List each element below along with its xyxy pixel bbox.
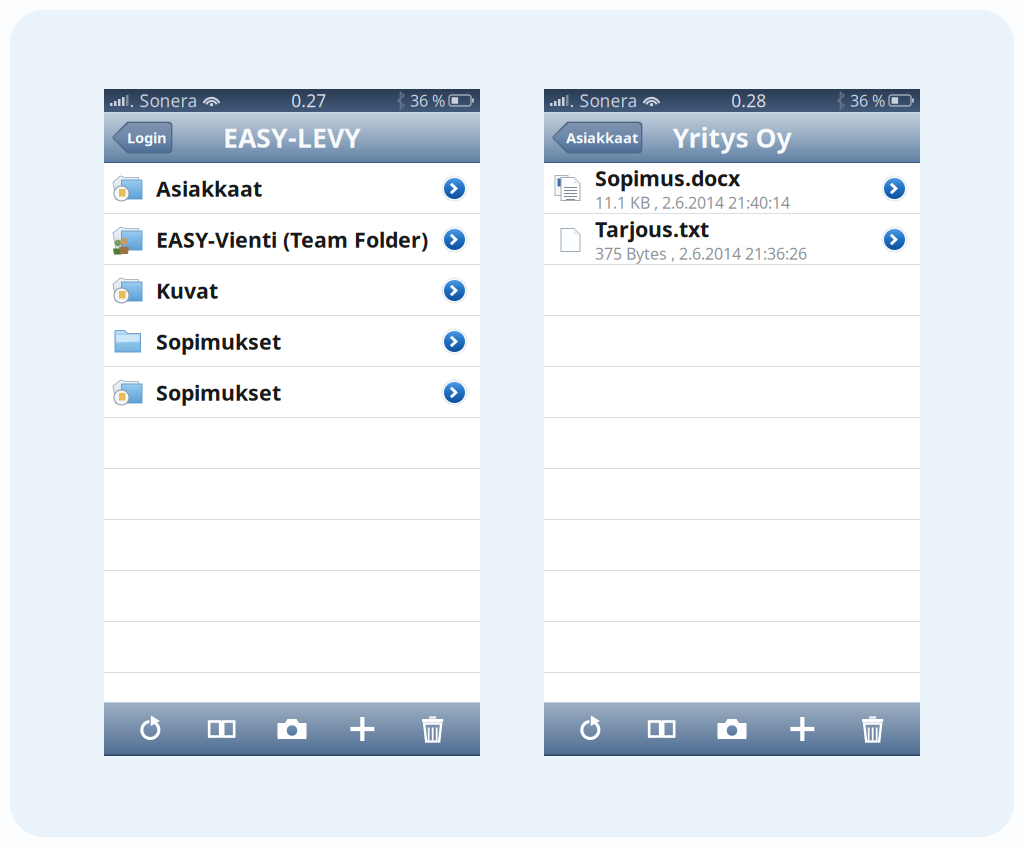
button[interactable]: EASY-Vienti (Team Folder) [104,214,480,265]
staticText: Sopimus.docx [595,164,740,192]
staticText: Asiakkaat [566,128,638,147]
button[interactable]: Refresh [128,707,174,751]
button[interactable]: Camera [269,707,315,751]
staticText: . Sonera [129,89,197,112]
button[interactable]: Add [339,707,385,751]
staticText: EASY-Vienti (Team Folder) [156,225,428,254]
button[interactable]: Sopimus.docx [544,163,920,214]
staticText: . Sonera [569,89,637,112]
staticText: 36 % [410,90,445,111]
staticText: 36 % [850,90,885,111]
staticText: Asiakkaat [156,174,262,203]
staticText: 11.1 KB , 2.6.2014 21:40:14 [595,192,790,213]
staticText: Sopimukset [156,327,281,356]
button[interactable]: Sopimukset [104,367,480,418]
button[interactable]: Login [111,121,173,154]
staticText: Tarjous.txt [595,215,709,243]
staticText: Sopimukset [156,378,281,407]
button[interactable]: Sopimukset [104,316,480,367]
staticText: 375 Bytes , 2.6.2014 21:36:26 [595,243,807,264]
button[interactable]: Kuvat [104,265,480,316]
button[interactable]: Asiakkaat [551,121,643,154]
staticText: 0.27 [291,89,326,112]
button[interactable]: Refresh [568,707,614,751]
button[interactable]: Asiakkaat [104,163,480,214]
staticText: Yritys Oy [672,120,791,155]
button[interactable]: Camera [709,707,755,751]
staticText: Login [127,128,167,147]
button[interactable]: Delete [850,707,896,751]
button[interactable]: Bookmarks [639,707,685,751]
staticText: Kuvat [156,276,218,305]
button[interactable]: Bookmarks [199,707,245,751]
button[interactable]: Delete [410,707,456,751]
button[interactable]: Tarjous.txt [544,214,920,265]
button[interactable]: Add [779,707,825,751]
staticText: 0.28 [731,89,766,112]
staticText: EASY-LEVY [223,120,361,155]
